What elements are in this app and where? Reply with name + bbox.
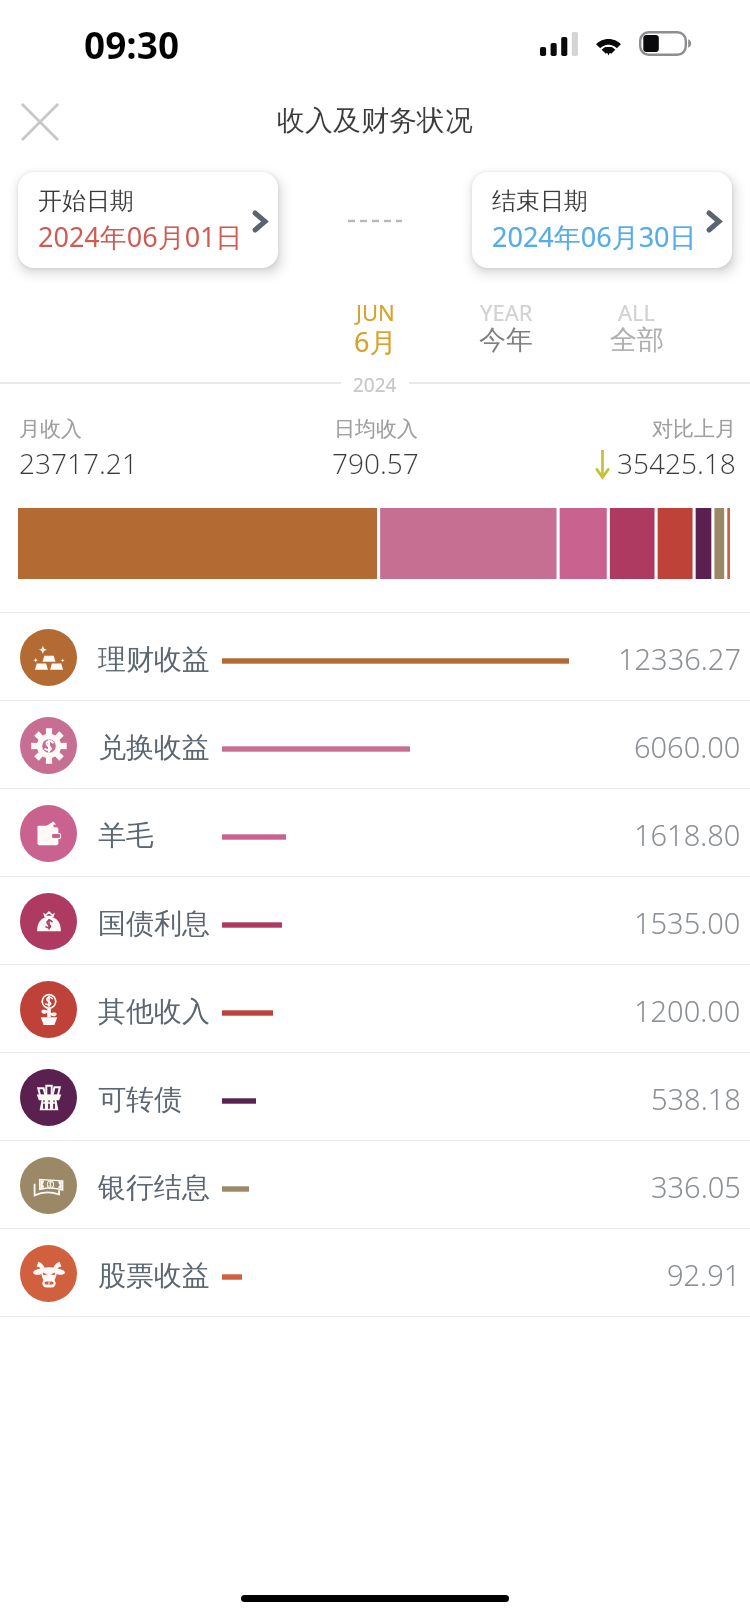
staticText: 2024 xyxy=(353,372,397,394)
button[interactable]: 理财收益 xyxy=(0,613,750,701)
staticText: 1535.00 xyxy=(634,903,741,942)
button[interactable]: YEAR xyxy=(444,290,568,364)
staticText: 538.18 xyxy=(651,1079,741,1118)
button[interactable]: 国债利息 xyxy=(0,877,750,965)
staticText: 2024年06月01日 xyxy=(38,218,243,255)
staticText: 银行结息 xyxy=(98,1170,210,1205)
staticText: ALL xyxy=(618,297,656,327)
button[interactable]: 结束日期 xyxy=(472,172,732,268)
staticText: 理财收益 xyxy=(98,642,210,677)
button[interactable]: 其他收入 xyxy=(0,965,750,1053)
staticText: 其他收入 xyxy=(98,994,210,1029)
button[interactable]: 开始日期 xyxy=(18,172,278,268)
staticText: 23717.21 xyxy=(19,444,138,482)
staticText: YEAR xyxy=(480,297,533,327)
staticText: 2024年06月30日 xyxy=(492,218,697,255)
button[interactable]: Close xyxy=(6,88,74,156)
staticText: 收入及财务状况 xyxy=(277,103,473,138)
button[interactable]: 兑换收益 xyxy=(0,701,750,789)
button[interactable]: JUN xyxy=(313,290,437,364)
staticText: 全部 xyxy=(610,323,664,357)
staticText: 790.57 xyxy=(332,444,419,482)
staticText: 国债利息 xyxy=(98,906,210,941)
button[interactable]: ALL xyxy=(575,290,699,364)
button[interactable]: 可转债 xyxy=(0,1053,750,1141)
staticText: 可转债 xyxy=(98,1082,182,1117)
staticText: 6月 xyxy=(354,323,397,360)
staticText: 日均收入 xyxy=(334,416,418,442)
button[interactable]: 羊毛 xyxy=(0,789,750,877)
staticText: 羊毛 xyxy=(98,818,154,853)
staticText: 结束日期 xyxy=(492,186,588,216)
staticText: 12336.27 xyxy=(618,639,741,678)
staticText: 09:30 xyxy=(84,19,180,69)
staticText: 6060.00 xyxy=(634,727,741,766)
staticText: 对比上月 xyxy=(652,416,736,442)
staticText: 1200.00 xyxy=(634,991,741,1030)
staticText: 月收入 xyxy=(19,416,82,442)
staticText: 兑换收益 xyxy=(98,730,210,765)
staticText: 开始日期 xyxy=(38,186,134,216)
button[interactable]: 股票收益 xyxy=(0,1229,750,1317)
staticText: 今年 xyxy=(479,323,533,357)
button[interactable]: 银行结息 xyxy=(0,1141,750,1229)
staticText: 92.91 xyxy=(667,1255,741,1294)
staticText: JUN xyxy=(356,297,395,327)
staticText: 336.05 xyxy=(651,1167,741,1206)
staticText: 1618.80 xyxy=(634,815,741,854)
staticText: 35425.18 xyxy=(617,444,736,482)
staticText: 股票收益 xyxy=(98,1258,210,1293)
